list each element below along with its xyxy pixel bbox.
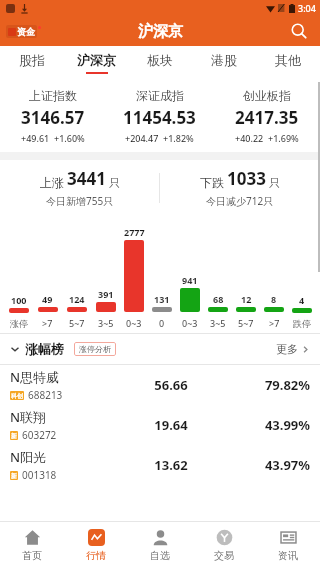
button[interactable]: 2777 bbox=[120, 226, 148, 329]
button[interactable]: N思特威 bbox=[0, 365, 320, 405]
staticText: 3441 bbox=[67, 167, 106, 190]
button[interactable]: 8 bbox=[260, 293, 288, 329]
button[interactable]: 涨幅榜 bbox=[10, 341, 64, 357]
button[interactable]: 深证成指 bbox=[106, 88, 213, 144]
staticText: 科创 bbox=[11, 392, 23, 400]
button[interactable]: 68 bbox=[204, 293, 232, 329]
staticText: 只 bbox=[109, 176, 120, 190]
staticText: 涨停分析 bbox=[79, 344, 111, 354]
staticText: 2417.35 bbox=[235, 106, 299, 129]
staticText: 0~3 bbox=[126, 317, 142, 329]
staticText: 下跌 bbox=[200, 175, 224, 190]
staticText: 12 bbox=[241, 293, 252, 305]
staticText: 涨停 bbox=[10, 318, 28, 329]
staticText: +1.69% bbox=[268, 132, 299, 144]
staticText: 56.66 bbox=[128, 376, 214, 394]
staticText: 3146.57 bbox=[21, 106, 85, 129]
staticText: 68 bbox=[213, 293, 224, 305]
button[interactable]: 首页 bbox=[0, 521, 64, 569]
staticText: 涨幅榜 bbox=[25, 341, 64, 357]
staticText: >7 bbox=[269, 317, 280, 329]
button[interactable]: 941 bbox=[176, 274, 204, 329]
button[interactable]: 涨停分析 bbox=[74, 342, 116, 356]
staticText: 3~5 bbox=[210, 317, 226, 329]
button[interactable]: 391 bbox=[91, 288, 120, 329]
button[interactable]: 上涨 bbox=[0, 167, 159, 208]
staticText: 更多 bbox=[276, 342, 298, 356]
staticText: 新 bbox=[11, 472, 17, 480]
button[interactable]: 12 bbox=[232, 293, 260, 329]
staticText: N阳光 bbox=[10, 448, 47, 466]
staticText: 124 bbox=[69, 293, 85, 305]
button[interactable]: 创业板指 bbox=[213, 88, 320, 144]
staticText: 沪深京 bbox=[138, 22, 183, 41]
button[interactable]: 板块 bbox=[128, 46, 192, 80]
staticText: 3:04 bbox=[298, 2, 316, 14]
staticText: 深证成指 bbox=[136, 88, 184, 103]
staticText: 资金 bbox=[17, 26, 35, 37]
staticText: 上涨 bbox=[40, 175, 64, 190]
staticText: 自选 bbox=[150, 549, 170, 562]
button[interactable]: N阳光 bbox=[0, 445, 320, 485]
staticText: 上证指数 bbox=[29, 88, 77, 103]
staticText: 只 bbox=[269, 176, 280, 190]
button[interactable]: 资讯 bbox=[256, 521, 320, 569]
staticText: 001318 bbox=[22, 468, 57, 482]
staticText: 今日减少712只 bbox=[206, 194, 274, 208]
button[interactable]: 100 bbox=[4, 294, 33, 329]
staticText: 13.62 bbox=[128, 456, 214, 474]
staticText: +1.60% bbox=[54, 132, 85, 144]
button[interactable]: 股指 bbox=[0, 46, 64, 80]
staticText: 沪深京 bbox=[77, 52, 116, 68]
button[interactable]: 131 bbox=[148, 293, 176, 329]
staticText: 11454.53 bbox=[123, 106, 196, 129]
staticText: 行情 bbox=[86, 549, 106, 562]
staticText: 创业板指 bbox=[243, 88, 291, 103]
staticText: 8 bbox=[271, 293, 277, 305]
staticText: 4 bbox=[299, 294, 305, 306]
staticText: 941 bbox=[182, 274, 198, 286]
button[interactable]: 更多 bbox=[276, 342, 310, 356]
staticText: 跌停 bbox=[293, 318, 311, 329]
staticText: 5~7 bbox=[238, 317, 254, 329]
button[interactable]: N联翔 bbox=[0, 405, 320, 445]
staticText: 新 bbox=[11, 432, 17, 440]
button[interactable]: 看资金 bbox=[6, 25, 37, 38]
staticText: +204.47 bbox=[125, 132, 159, 144]
button[interactable]: 49 bbox=[33, 293, 62, 329]
staticText: 49 bbox=[42, 293, 53, 305]
staticText: 资讯 bbox=[278, 549, 298, 562]
staticText: 79.82% bbox=[214, 376, 310, 394]
staticText: 港股 bbox=[211, 52, 237, 68]
staticText: +49.61 bbox=[21, 132, 50, 144]
button[interactable]: 其他 bbox=[256, 46, 320, 80]
staticText: 5~7 bbox=[69, 317, 85, 329]
staticText: 1033 bbox=[227, 167, 266, 190]
staticText: 板块 bbox=[147, 52, 173, 68]
button[interactable]: 自选 bbox=[128, 521, 192, 569]
staticText: N思特威 bbox=[10, 368, 60, 386]
button[interactable]: 港股 bbox=[192, 46, 256, 80]
staticText: 391 bbox=[98, 288, 114, 300]
button[interactable]: 上证指数 bbox=[0, 88, 106, 144]
button[interactable]: 124 bbox=[62, 293, 91, 329]
button[interactable]: 交易 bbox=[192, 521, 256, 569]
staticText: 43.97% bbox=[214, 456, 310, 474]
staticText: 0~3 bbox=[182, 317, 198, 329]
staticText: 131 bbox=[154, 293, 170, 305]
button[interactable]: 下跌 bbox=[160, 167, 320, 208]
button[interactable]: 4 bbox=[288, 294, 316, 329]
staticText: 19.64 bbox=[128, 416, 214, 434]
staticText: 今日新增755只 bbox=[46, 194, 114, 208]
button[interactable]: Search bbox=[286, 18, 312, 44]
staticText: +40.22 bbox=[235, 132, 264, 144]
staticText: 100 bbox=[11, 294, 27, 306]
button[interactable]: 沪深京 bbox=[64, 46, 128, 80]
button[interactable]: 行情 bbox=[64, 521, 128, 569]
staticText: N联翔 bbox=[10, 408, 47, 426]
staticText: 688213 bbox=[28, 388, 63, 402]
staticText: 3~5 bbox=[98, 317, 114, 329]
staticText: +1.82% bbox=[163, 132, 194, 144]
staticText: 交易 bbox=[214, 549, 234, 562]
staticText: 首页 bbox=[22, 549, 42, 562]
